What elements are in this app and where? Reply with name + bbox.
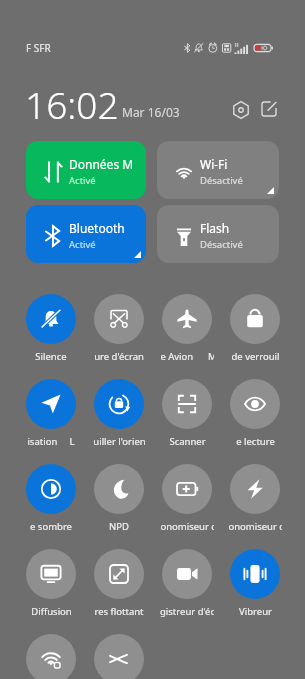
button[interactable]: Diffusion [17, 546, 85, 614]
button[interactable]: Partage Wi-Fi [17, 631, 85, 679]
staticText: res flottant [94, 605, 144, 618]
staticText: Données M [69, 156, 134, 172]
staticText: Wi-Fi [200, 156, 228, 172]
staticText: e lecture [236, 435, 275, 448]
button[interactable]: Verrouiller l'orientation [85, 376, 153, 444]
staticText: Désactivé [200, 174, 243, 187]
button[interactable]: Économiseur de batterie [153, 461, 221, 529]
staticText: Désactivé [200, 238, 243, 251]
staticText: Activé [69, 238, 96, 251]
button[interactable]: Mobile data [26, 141, 146, 199]
button[interactable]: Enregistreur d'écran [153, 546, 221, 614]
staticText: e Avion M [160, 350, 214, 363]
staticText: Activé [69, 174, 96, 187]
button[interactable]: Aléatoire [85, 631, 153, 679]
staticText: 16:02 [25, 79, 119, 129]
staticText: Scanner [169, 435, 206, 448]
staticText: Flash [200, 220, 230, 236]
button[interactable]: Flashlight [157, 205, 279, 263]
button[interactable]: Vibreur [221, 546, 289, 614]
button[interactable]: NPD [85, 461, 153, 529]
button[interactable]: Scanner [153, 376, 221, 444]
button[interactable]: Localisation [17, 376, 85, 444]
staticText: onomiseur de [160, 520, 214, 533]
staticText: uiller l'orien [93, 435, 146, 448]
button[interactable]: Silence [17, 291, 85, 359]
button[interactable]: Mode lecture [221, 376, 289, 444]
staticText: e sombre [30, 520, 72, 533]
staticText: onomiseur de [228, 520, 282, 533]
button[interactable]: Edit [255, 95, 283, 123]
staticText: Silence [35, 350, 67, 363]
button[interactable]: Settings [227, 96, 255, 124]
staticText: isation L [27, 435, 75, 448]
button[interactable]: Bluetooth [26, 205, 146, 263]
staticText: NPD [109, 520, 129, 533]
button[interactable]: Fenêtres flottantes [85, 546, 153, 614]
staticText: Mar 16/03 [122, 104, 180, 120]
button[interactable]: Mode Avion [153, 291, 221, 359]
staticText: Diffusion [31, 605, 72, 618]
staticText: gistreur d'éc [160, 605, 214, 618]
staticText: Vibreur [239, 605, 272, 618]
button[interactable]: Wi-Fi [157, 141, 279, 199]
button[interactable]: Mode de verrouillage [221, 291, 289, 359]
staticText: de verrouil [231, 350, 280, 363]
staticText: F SFR [26, 41, 51, 55]
staticText: ure d'écran [94, 350, 144, 363]
staticText: Bluetooth [69, 220, 125, 236]
button[interactable]: Capture d'écran [85, 291, 153, 359]
button[interactable]: Mode sombre [17, 461, 85, 529]
button[interactable]: Économiseur de données [221, 461, 289, 529]
